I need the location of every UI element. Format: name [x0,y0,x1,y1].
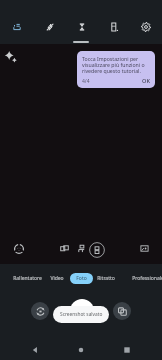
button[interactable]: Ritratto [91,273,121,284]
button[interactable]: Home [75,344,87,356]
button[interactable]: Settings [134,15,158,39]
button[interactable]: Video [44,273,70,284]
button[interactable]: Resolution [89,242,105,258]
button[interactable]: Flash off [38,15,62,39]
button[interactable]: Tocca Impostazioni per visualizzare più … [77,51,155,88]
staticText: Foto [76,275,87,282]
staticText: Rallentatore [13,275,42,282]
button[interactable]: Timer [70,15,94,39]
button[interactable]: Screenshot salvato [53,306,109,323]
button[interactable]: OK [142,77,150,85]
button[interactable]: Gallery [113,302,131,320]
button[interactable]: Shutter [70,299,94,323]
staticText: Professionale [132,275,162,282]
staticText: Video [50,275,64,282]
button[interactable]: Rallentatore [7,273,48,284]
button[interactable]: AI enhance [4,50,17,63]
button[interactable]: Back [29,344,41,356]
button[interactable]: Scene [76,243,87,254]
staticText: 4/4 [82,78,90,85]
staticText: Screenshot salvato [60,311,103,318]
button[interactable]: Aspect ratio [102,15,126,39]
button[interactable]: Scene optimizer [5,15,29,39]
staticText: Tocca Impostazioni per visualizzare più … [82,55,150,75]
staticText: OK [142,77,150,85]
button[interactable]: Photo size [139,243,150,254]
button[interactable]: Foto [70,273,93,284]
staticText: Ritratto [97,275,115,282]
button[interactable]: Effects [59,243,70,254]
button[interactable]: Professionale [126,273,162,284]
button[interactable]: Switch camera [31,302,49,320]
button[interactable]: Lens [13,243,25,255]
button[interactable]: Recents [121,344,133,356]
